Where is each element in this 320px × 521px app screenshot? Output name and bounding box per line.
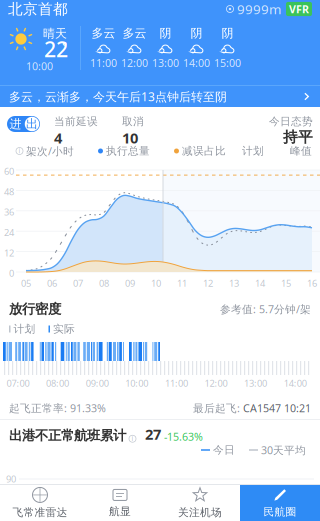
- staticText: 16: [307, 277, 317, 289]
- staticText: 民航圈: [263, 505, 296, 518]
- staticText: 飞常准雷达: [12, 506, 67, 519]
- staticText: 36: [4, 206, 14, 218]
- staticText: 北京首都: [8, 0, 68, 18]
- staticText: 30天平均: [261, 443, 306, 457]
- staticText: 12:00: [121, 56, 148, 70]
- staticText: 14:00: [183, 56, 210, 70]
- staticText: 关注机场: [178, 506, 222, 519]
- staticText: 90: [6, 473, 16, 485]
- staticText: 多云，云渐多，今天午后13点钟后转至阴: [9, 88, 227, 104]
- staticText: 今日态势: [269, 115, 313, 128]
- button[interactable]: 多云，云渐多，今天午后13点钟后转至阴: [0, 86, 320, 107]
- staticText: 进: [9, 117, 21, 131]
- staticText: 13: [229, 277, 239, 289]
- staticText: 阴: [190, 26, 202, 41]
- staticText: -15.63%: [164, 430, 203, 444]
- staticText: 12:00: [204, 377, 227, 389]
- staticText: 4: [54, 128, 62, 148]
- staticText: 减误占比: [182, 144, 226, 157]
- staticText: 11:00: [90, 56, 117, 70]
- button[interactable]: 飞常准雷达: [0, 485, 80, 521]
- staticText: 10: [122, 128, 138, 148]
- staticText: 计划: [242, 144, 264, 157]
- staticText: 22: [44, 35, 68, 63]
- staticText: 9999m: [237, 0, 281, 18]
- staticText: 15:00: [214, 56, 241, 70]
- staticText: 12: [4, 247, 14, 259]
- staticText: CA1547 10:21: [243, 401, 311, 415]
- staticText: 阴: [221, 26, 233, 41]
- staticText: 峰值: [290, 144, 312, 157]
- staticText: 06: [47, 277, 57, 289]
- staticText: 计划: [13, 322, 35, 335]
- staticText: 架次/小时: [26, 144, 74, 158]
- staticText: 09: [125, 277, 135, 289]
- staticText: 当前延误: [54, 115, 98, 128]
- staticText: 0: [9, 267, 14, 279]
- staticText: 13:00: [152, 56, 179, 70]
- staticText: 10:00: [125, 377, 148, 389]
- button[interactable]: 民航圈: [240, 485, 320, 521]
- staticText: 27: [145, 424, 161, 444]
- staticText: 出: [26, 117, 38, 131]
- button[interactable]: 关注机场: [160, 485, 240, 521]
- staticText: 48: [4, 185, 14, 198]
- staticText: 最后起飞:: [193, 401, 243, 415]
- staticText: 08:00: [46, 377, 69, 389]
- staticText: 阴: [159, 26, 171, 41]
- staticText: i: [131, 434, 133, 443]
- staticText: 08: [99, 277, 109, 289]
- staticText: 07: [73, 277, 83, 289]
- staticText: 13:00: [244, 377, 267, 389]
- staticText: 实际: [53, 322, 75, 335]
- staticText: 持平: [283, 128, 313, 146]
- staticText: i: [18, 146, 20, 155]
- staticText: 起飞正常率: 91.33%: [9, 401, 106, 415]
- staticText: 60: [4, 165, 14, 177]
- staticText: 执行总量: [106, 144, 150, 157]
- staticText: 今日: [213, 443, 235, 456]
- staticText: 14: [255, 277, 265, 289]
- button[interactable]: 航显: [80, 485, 160, 521]
- staticText: 多云: [122, 26, 146, 41]
- staticText: 航显: [109, 505, 131, 518]
- staticText: °: [62, 38, 67, 54]
- staticText: 取消: [122, 115, 144, 128]
- staticText: 11: [177, 277, 187, 289]
- staticText: 放行密度: [9, 301, 61, 317]
- staticText: 出港不正常航班累计: [9, 427, 126, 444]
- staticText: 24: [4, 226, 14, 239]
- staticText: 12: [203, 277, 213, 289]
- button[interactable]: 进: [7, 116, 40, 132]
- staticText: 15: [281, 277, 291, 289]
- staticText: VFR: [289, 2, 309, 16]
- staticText: 11:00: [165, 377, 188, 389]
- staticText: 07:00: [6, 377, 29, 389]
- staticText: 10: [151, 277, 161, 289]
- staticText: 参考值: 5.7分钟/架: [220, 302, 311, 316]
- staticText: 多云: [91, 26, 115, 41]
- staticText: 10:00: [26, 59, 53, 73]
- staticText: 05: [21, 277, 31, 289]
- staticText: 14:00: [284, 377, 307, 389]
- staticText: 晴天: [43, 26, 67, 41]
- staticText: 09:00: [86, 377, 109, 389]
